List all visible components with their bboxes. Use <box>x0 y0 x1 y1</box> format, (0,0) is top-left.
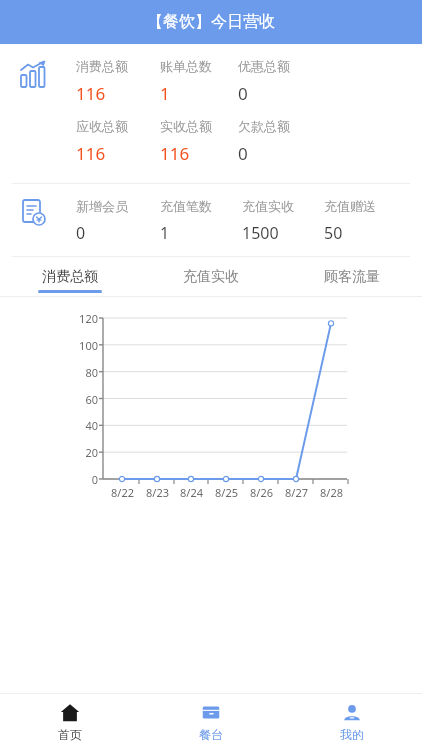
staticText: 116 <box>160 142 190 165</box>
staticText: 优惠总额 <box>238 58 290 74</box>
staticText: 50 <box>324 222 343 244</box>
staticText: 餐台 <box>199 727 223 742</box>
staticText: 0 <box>76 222 86 244</box>
staticText: 充值实收 <box>183 268 239 286</box>
button[interactable]: 顾客流量 <box>281 257 422 296</box>
staticText: 消费总额 <box>76 58 128 74</box>
staticText: 116 <box>76 142 106 165</box>
staticText: 0 <box>238 82 248 105</box>
staticText: 8/28 <box>320 485 343 500</box>
staticText: 8/25 <box>215 485 238 500</box>
button[interactable]: 消费总额 <box>0 257 140 296</box>
staticText: 充值赠送 <box>324 198 376 214</box>
staticText: 40 <box>85 418 98 433</box>
staticText: 0 <box>238 142 248 165</box>
staticText: 实收总额 <box>160 118 212 134</box>
staticText: 8/24 <box>180 485 203 500</box>
staticText: 20 <box>85 445 98 460</box>
staticText: 8/23 <box>146 485 169 500</box>
staticText: 120 <box>79 311 98 326</box>
staticText: 账单总数 <box>160 58 212 74</box>
staticText: 我的 <box>340 727 364 742</box>
staticText: 消费总额 <box>42 268 98 286</box>
staticText: 80 <box>85 365 98 380</box>
staticText: 【餐饮】今日营收 <box>147 12 275 32</box>
staticText: 8/22 <box>111 485 134 500</box>
staticText: 0 <box>91 472 98 487</box>
staticText: 新增会员 <box>76 198 128 214</box>
button[interactable]: 首页 <box>0 694 140 750</box>
staticText: 60 <box>85 392 98 407</box>
button[interactable]: 充值实收 <box>140 257 281 296</box>
staticText: 充值实收 <box>242 198 294 214</box>
staticText: 首页 <box>58 727 82 742</box>
staticText: 1500 <box>242 222 279 244</box>
staticText: 充值笔数 <box>160 198 212 214</box>
button[interactable]: 餐台 <box>140 694 281 750</box>
staticText: 100 <box>79 338 98 353</box>
staticText: 8/26 <box>250 485 273 500</box>
staticText: 1 <box>160 82 170 105</box>
staticText: 欠款总额 <box>238 118 290 134</box>
staticText: 1 <box>160 222 170 244</box>
staticText: 应收总额 <box>76 118 128 134</box>
button[interactable]: 我的 <box>281 694 422 750</box>
staticText: 顾客流量 <box>324 268 380 286</box>
staticText: 116 <box>76 82 106 105</box>
staticText: 8/27 <box>285 485 308 500</box>
